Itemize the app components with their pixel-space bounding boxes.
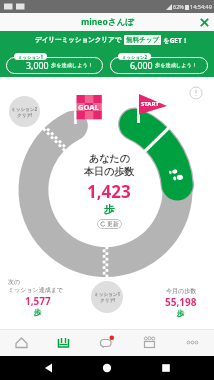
staticText: あなたの: [89, 152, 130, 165]
button[interactable]: More: [171, 329, 214, 356]
button[interactable]: Rewards: [128, 329, 171, 356]
staticText: をGET！: [163, 36, 189, 45]
staticText: デイリーミッションクリアで: [35, 36, 122, 44]
staticText: 歩: [177, 309, 185, 318]
staticText: 次の: [8, 278, 21, 286]
staticText: クリア!: [17, 112, 33, 118]
button[interactable]: ミッション2: [9, 96, 40, 127]
staticText: 14:54:49: [190, 3, 212, 10]
button[interactable]: ミッション1: [91, 281, 123, 313]
staticText: 今月の歩数: [166, 287, 197, 295]
staticText: 更新: [107, 220, 119, 228]
staticText: 歩: [34, 308, 42, 317]
button[interactable]: Missions: [42, 329, 85, 356]
button[interactable]: Chat: [85, 329, 128, 356]
staticText: 6,000: [130, 60, 153, 72]
button[interactable]: Home: [97, 358, 117, 378]
staticText: 歩を達成しよう！: [155, 62, 197, 69]
staticText: ミッション1: [94, 291, 121, 297]
staticText: mineoさんぽ: [81, 16, 134, 28]
staticText: 歩を達成しよう！: [51, 62, 93, 69]
button[interactable]: Recents: [156, 358, 176, 378]
button[interactable]: 3,000: [6, 53, 103, 74]
staticText: 62%: [173, 3, 184, 10]
staticText: ミッション2: [122, 54, 147, 60]
button[interactable]: Info: [189, 86, 203, 100]
staticText: 無料チップ: [126, 36, 159, 44]
staticText: GOAL: [78, 102, 99, 112]
button[interactable]: Home: [0, 329, 42, 356]
staticText: START: [141, 100, 159, 108]
staticText: クリア!: [100, 297, 116, 303]
staticText: 55,198: [165, 295, 197, 309]
button[interactable]: Close: [197, 15, 211, 29]
staticText: ミッション2: [11, 106, 38, 112]
staticText: 3,000: [26, 60, 49, 72]
button[interactable]: Back: [39, 358, 59, 378]
button[interactable]: 6,000: [110, 53, 208, 74]
staticText: 本日の歩数: [84, 165, 135, 178]
staticText: ミッション達成まで: [8, 286, 63, 294]
staticText: ミッション1: [18, 54, 43, 60]
staticText: 歩: [104, 203, 115, 216]
staticText: 1,423: [87, 180, 131, 203]
button[interactable]: 更新: [97, 219, 122, 229]
staticText: 1,577: [25, 294, 51, 308]
